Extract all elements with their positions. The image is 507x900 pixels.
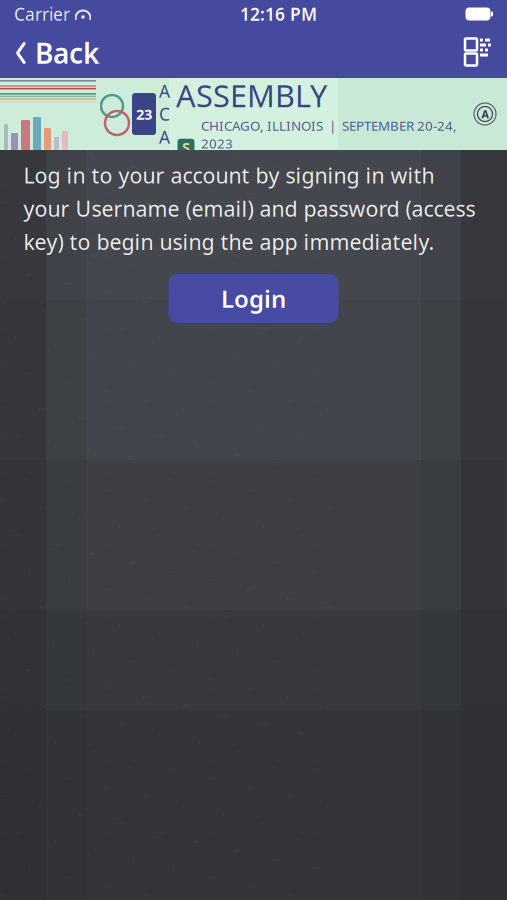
staticText: Log in to your account by signing in wit… xyxy=(23,161,475,256)
staticText: A xyxy=(159,79,170,102)
staticText: Back xyxy=(35,34,99,72)
staticText: S xyxy=(182,137,190,157)
staticText: 12:16 PM xyxy=(240,2,317,25)
staticText: C xyxy=(159,102,170,125)
staticText: ANNUAL CLINICAL ASSEMBLY xyxy=(176,34,441,116)
staticText: 23 xyxy=(136,104,152,124)
staticText: Login xyxy=(221,283,286,314)
staticText: A xyxy=(159,125,170,148)
button[interactable]: Login xyxy=(168,274,338,323)
button[interactable]: Scan QR code xyxy=(452,28,507,78)
staticText: CHICAGO, ILLINOIS | SEPTEMBER 20-24, 202… xyxy=(201,117,457,152)
staticText: Carrier xyxy=(14,2,70,25)
staticText: A xyxy=(481,107,488,121)
button[interactable]: Back xyxy=(0,28,109,78)
staticText: ENGAGING THE FUTURE OF OSTEOPATHIC SURGE… xyxy=(201,158,459,194)
